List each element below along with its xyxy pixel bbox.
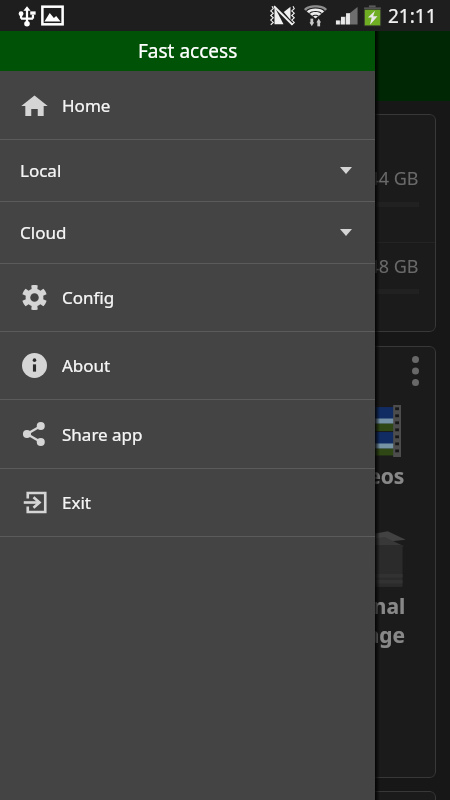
staticText: Cloud xyxy=(20,221,67,244)
staticText: Share app xyxy=(62,423,143,446)
staticText: Fast access xyxy=(138,38,238,64)
button[interactable]: Exit xyxy=(0,469,375,536)
button[interactable]: Share app xyxy=(0,400,375,468)
button[interactable]: About xyxy=(0,332,375,399)
button[interactable]: Local xyxy=(0,140,375,201)
staticText: Exit xyxy=(62,491,91,514)
staticText: Home xyxy=(62,94,111,117)
button[interactable]: Config xyxy=(0,264,375,331)
staticText: Config xyxy=(62,286,115,309)
staticText: 21:11 xyxy=(388,3,437,29)
staticText: About xyxy=(62,354,111,377)
button[interactable]: Home xyxy=(0,71,375,139)
staticText: Local xyxy=(20,159,62,182)
staticText: Videos xyxy=(335,462,405,491)
button[interactable]: Cloud xyxy=(0,202,375,263)
staticText: 22.48 GB xyxy=(343,254,419,279)
staticText: storage xyxy=(325,621,406,650)
staticText: Internal xyxy=(320,592,406,621)
staticText: 13.44 GB xyxy=(343,166,419,191)
